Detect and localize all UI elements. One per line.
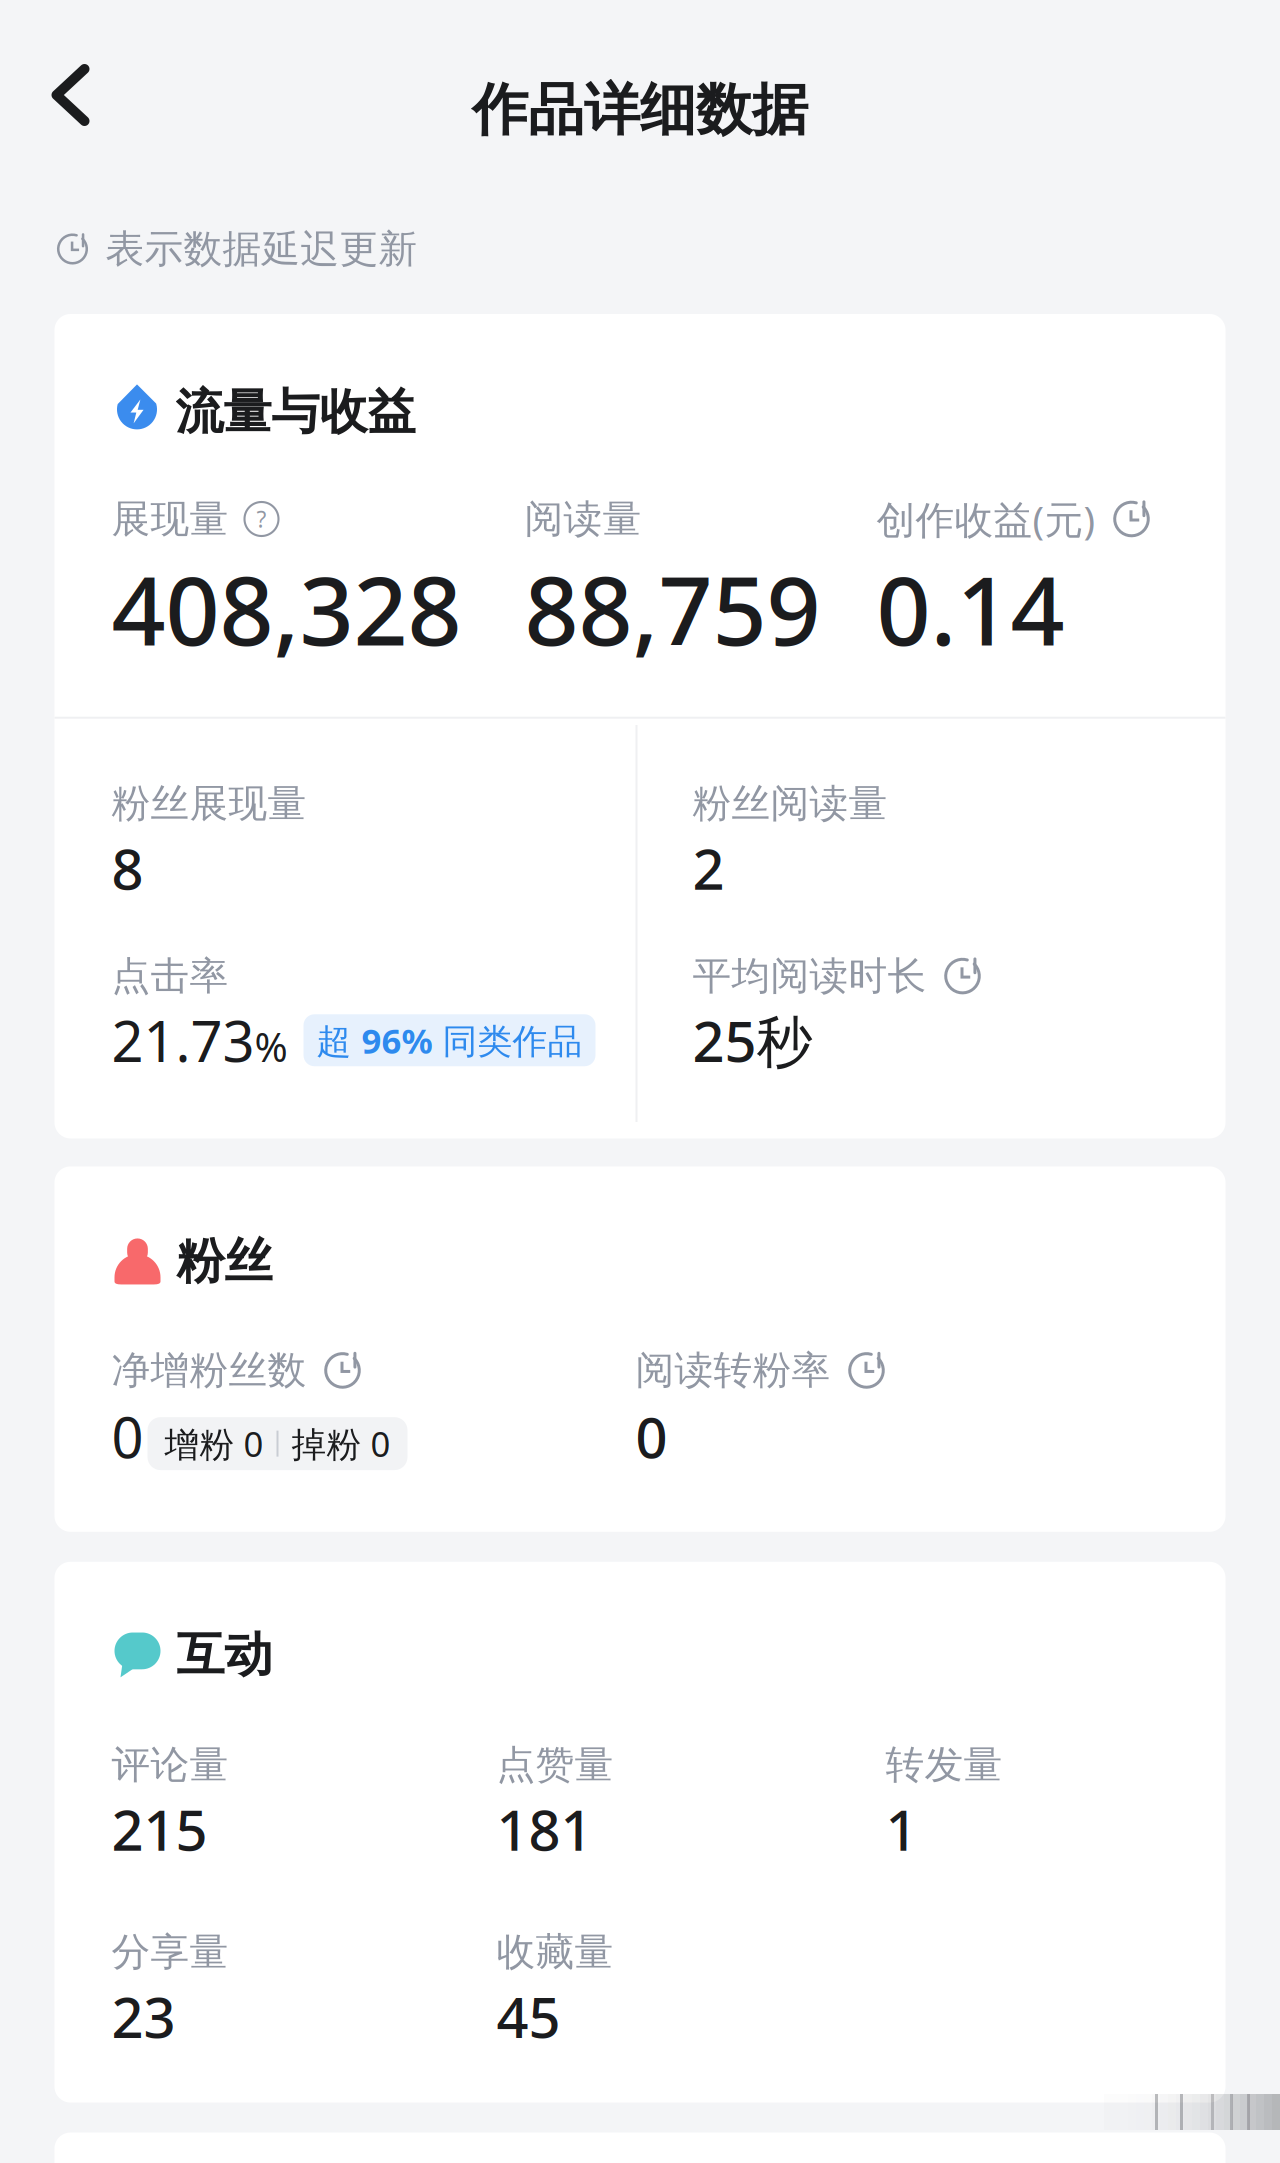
staticText: 展现量 <box>111 495 228 543</box>
staticText: 净增粉丝数 <box>111 1347 306 1394</box>
staticText: 流量与收益 <box>175 382 415 441</box>
staticText: 收藏量 <box>496 1928 613 1976</box>
staticText: 0 <box>111 1399 143 1474</box>
staticText: 2 <box>692 831 724 905</box>
staticText: 181 <box>496 1792 592 1866</box>
staticText: ? <box>256 504 266 534</box>
staticText: 阅读转粉率 <box>635 1347 830 1394</box>
staticText: 分享量 <box>111 1928 228 1976</box>
staticText: 23 <box>111 1979 175 2054</box>
staticText: 点击率 <box>111 952 228 1000</box>
staticText: 88,759 <box>524 546 820 672</box>
staticText: 增粉 0 <box>164 1421 263 1467</box>
staticText: 粉丝阅读量 <box>692 780 887 827</box>
staticText: 8 <box>111 831 143 905</box>
staticText: 互动 <box>176 1625 272 1684</box>
staticText: 25秒 <box>692 1003 812 1077</box>
staticText: 0.14 <box>876 546 1064 672</box>
staticText: 表示数据延迟更新 <box>105 225 417 273</box>
staticText: 评论量 <box>111 1741 228 1789</box>
staticText: 粉丝 <box>176 1232 272 1291</box>
staticText: 转发量 <box>885 1741 1002 1789</box>
staticText: 45 <box>496 1979 560 2054</box>
staticText: 0 <box>635 1399 667 1474</box>
staticText: 粉丝展现量 <box>111 780 306 827</box>
staticText: 点赞量 <box>496 1741 613 1789</box>
staticText: 超 96% 同类作品 <box>316 1017 582 1063</box>
staticText: 作品详细数据 <box>472 76 808 144</box>
staticText: 阅读量 <box>524 495 641 543</box>
staticText: 平均阅读时长 <box>692 952 926 1000</box>
staticText: 215 <box>111 1792 207 1866</box>
staticText: 21.73% <box>111 1003 287 1077</box>
staticText: 掉粉 0 <box>291 1421 390 1467</box>
button[interactable]: 返回 <box>0 33 141 157</box>
staticText: 1 <box>885 1792 917 1866</box>
staticText: 创作收益(元) <box>876 493 1095 545</box>
staticText: 408,328 <box>111 546 461 672</box>
